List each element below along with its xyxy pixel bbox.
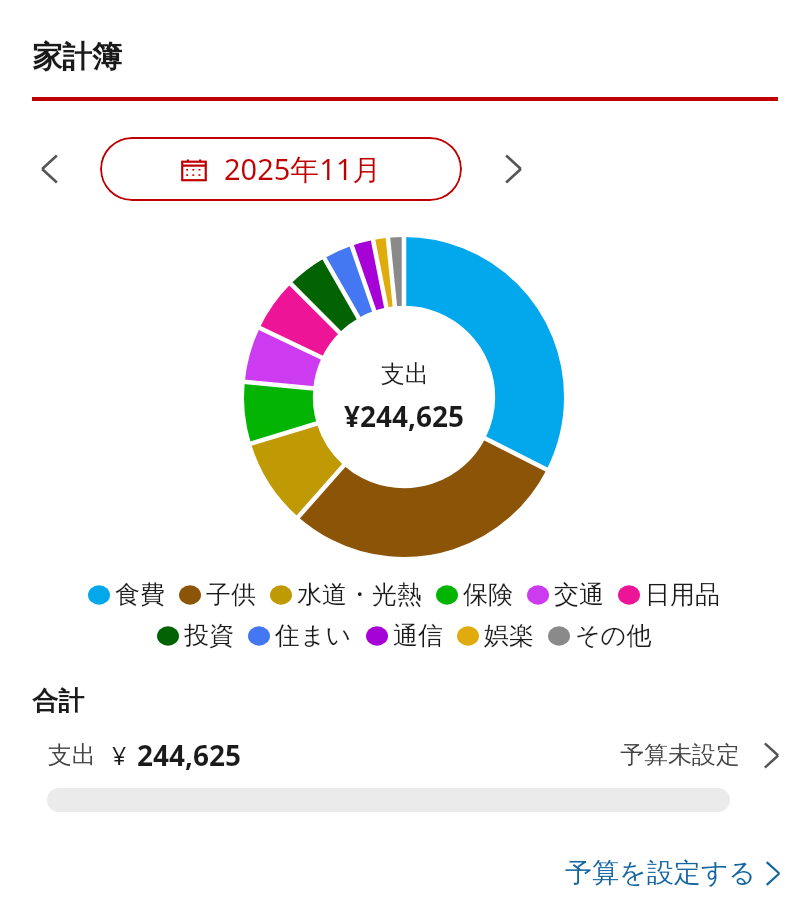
staticText: その他 <box>575 620 652 651</box>
staticText: 244,625 <box>137 736 242 774</box>
button[interactable]: 投資 <box>157 620 234 651</box>
staticText: 予算未設定 <box>620 740 740 770</box>
button[interactable]: 子供 <box>179 579 256 610</box>
button[interactable]: 交通 <box>527 579 604 610</box>
staticText: 予算を設定する <box>565 856 756 890</box>
staticText: 支出 <box>48 740 96 770</box>
staticText: 食費 <box>115 579 165 610</box>
button[interactable]: 2025年11月 <box>100 137 462 201</box>
staticText: ¥244,625 <box>344 397 465 435</box>
button[interactable]: 水道・光熱 <box>270 579 422 610</box>
button[interactable]: 予算を設定する <box>549 850 808 896</box>
staticText: 水道・光熱 <box>297 579 422 610</box>
staticText: 子供 <box>206 579 256 610</box>
staticText: 通信 <box>393 620 443 651</box>
staticText: ¥ <box>112 738 127 772</box>
button[interactable]: 通信 <box>366 620 443 651</box>
button[interactable]: 保険 <box>436 579 513 610</box>
staticText: 住まい <box>275 620 352 651</box>
button[interactable]: 前の月 <box>22 142 76 196</box>
button[interactable]: 娯楽 <box>457 620 534 651</box>
button[interactable]: 次の月 <box>486 142 540 196</box>
staticText: 2025年11月 <box>224 149 382 189</box>
staticText: 交通 <box>554 579 604 610</box>
button[interactable]: 住まい <box>248 620 352 651</box>
button[interactable]: 食費 <box>88 579 165 610</box>
staticText: 娯楽 <box>484 620 534 651</box>
staticText: 保険 <box>463 579 513 610</box>
staticText: 日用品 <box>645 579 720 610</box>
staticText: 家計簿 <box>32 38 122 76</box>
button[interactable]: その他 <box>548 620 652 651</box>
staticText: 投資 <box>184 620 234 651</box>
staticText: 合計 <box>32 685 84 718</box>
button[interactable]: 日用品 <box>618 579 720 610</box>
staticText: 支出 <box>381 359 429 389</box>
button[interactable]: 支出 <box>0 736 808 774</box>
